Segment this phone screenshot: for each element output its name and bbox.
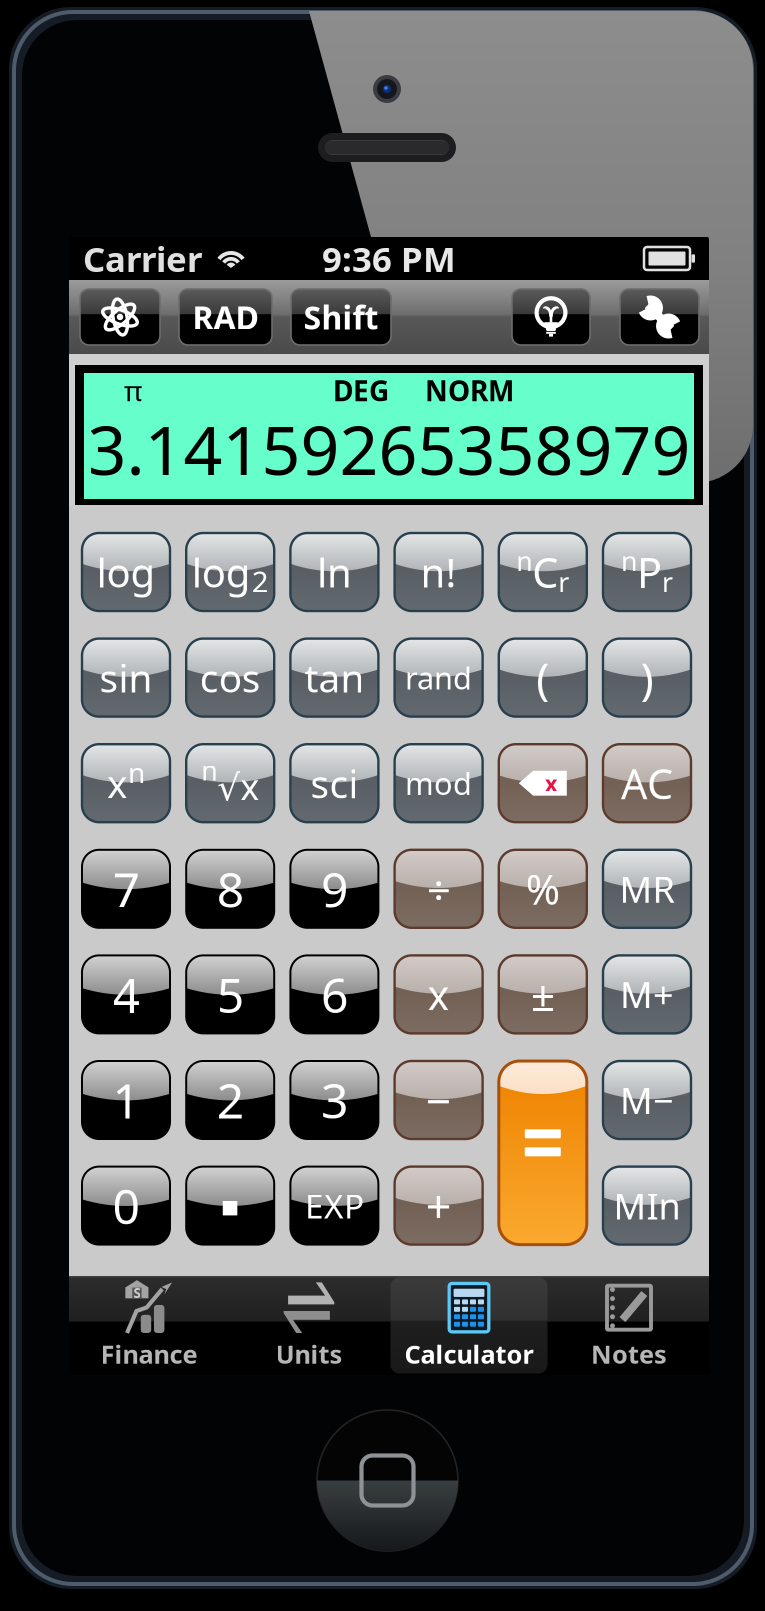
staticText: r xyxy=(558,564,569,600)
button[interactable]: n C r xyxy=(499,533,587,611)
staticText: ÷ xyxy=(427,860,451,917)
staticText: MR xyxy=(619,865,674,913)
button[interactable]: tan xyxy=(290,639,378,717)
staticText: 7 xyxy=(112,857,139,921)
staticText: n xyxy=(128,754,145,791)
staticText: x xyxy=(107,757,127,809)
button[interactable]: decimal point xyxy=(186,1167,274,1245)
staticText: Carrier xyxy=(83,235,202,281)
button[interactable]: sin xyxy=(82,639,170,717)
staticText: 2 xyxy=(252,561,269,600)
staticText: n xyxy=(201,752,217,788)
staticText: 0 xyxy=(112,1174,139,1237)
staticText: n xyxy=(621,543,637,579)
staticText: ( xyxy=(536,648,549,707)
button[interactable]: mod xyxy=(395,744,483,822)
staticText: ▪ xyxy=(220,1189,240,1222)
staticText: 5 xyxy=(217,962,244,1026)
staticText: sci xyxy=(310,757,358,809)
staticText: Calculator xyxy=(404,1337,533,1371)
staticText: x xyxy=(428,967,450,1022)
staticText: Finance xyxy=(100,1337,197,1371)
staticText: Notes xyxy=(591,1337,667,1371)
button[interactable]: factorial xyxy=(395,533,483,611)
button[interactable]: 5 xyxy=(186,955,274,1033)
staticText: − xyxy=(426,1070,452,1130)
button[interactable]: memory in xyxy=(603,1167,691,1245)
button[interactable]: delete xyxy=(499,744,587,822)
button[interactable]: natural log xyxy=(290,533,378,611)
button[interactable]: divide xyxy=(395,850,483,928)
button[interactable]: 3 xyxy=(290,1061,378,1139)
staticText: cos xyxy=(200,652,261,703)
staticText: MIn xyxy=(613,1182,680,1229)
staticText: RAD xyxy=(192,296,258,338)
staticText: NORM xyxy=(425,372,514,409)
staticText: 3.14159265358979 xyxy=(87,403,690,494)
button[interactable]: minus xyxy=(395,1061,483,1139)
staticText: 1 xyxy=(112,1068,139,1132)
staticText: ± xyxy=(531,966,555,1023)
staticText: EXP xyxy=(305,1183,364,1228)
button[interactable]: log xyxy=(82,533,170,611)
staticText: 6 xyxy=(321,962,348,1026)
button[interactable]: open parenthesis xyxy=(499,639,587,717)
staticText: S xyxy=(133,1284,140,1302)
button[interactable]: Hints xyxy=(512,289,590,345)
button[interactable]: n P r xyxy=(603,533,691,611)
button[interactable]: plus xyxy=(395,1167,483,1245)
button[interactable]: S xyxy=(69,1276,229,1375)
button[interactable]: Settings xyxy=(620,289,699,345)
button[interactable]: 4 xyxy=(82,955,170,1033)
staticText: tan xyxy=(304,652,364,703)
staticText: 3 xyxy=(321,1068,348,1132)
button[interactable]: memory recall xyxy=(603,850,691,928)
staticText: M+ xyxy=(620,970,674,1018)
button[interactable]: equals xyxy=(499,1061,587,1245)
button[interactable]: nth root of x xyxy=(186,744,274,822)
staticText: 9 xyxy=(321,857,348,921)
staticText: n! xyxy=(421,545,457,598)
button[interactable]: cos xyxy=(186,639,274,717)
button[interactable]: sci xyxy=(290,744,378,822)
button[interactable]: x to the n xyxy=(82,744,170,822)
staticText: Units xyxy=(275,1337,342,1371)
staticText: 2 xyxy=(217,1068,244,1132)
button[interactable]: percent xyxy=(499,850,587,928)
button[interactable]: RAD xyxy=(179,289,272,345)
button[interactable]: AC xyxy=(603,744,691,822)
staticText: sin xyxy=(99,652,152,703)
button[interactable]: 6 xyxy=(290,955,378,1033)
button[interactable]: memory add xyxy=(603,955,691,1033)
button[interactable]: 1 xyxy=(82,1061,170,1139)
button[interactable]: 9 xyxy=(290,850,378,928)
button[interactable]: Shift xyxy=(291,289,391,345)
button[interactable]: plus minus xyxy=(499,955,587,1033)
button[interactable]: EXP xyxy=(290,1167,378,1245)
staticText: C xyxy=(532,545,558,599)
button[interactable]: rand xyxy=(395,639,483,717)
staticText: 8 xyxy=(217,857,244,921)
staticText: mod xyxy=(405,763,472,803)
button[interactable]: 7 xyxy=(82,850,170,928)
button[interactable]: Units xyxy=(229,1276,389,1375)
button[interactable]: memory subtract xyxy=(603,1061,691,1139)
button[interactable]: multiply xyxy=(395,955,483,1033)
button[interactable]: 0 xyxy=(82,1167,170,1245)
staticText: DEG xyxy=(333,372,389,409)
button[interactable]: close parenthesis xyxy=(603,639,691,717)
staticText: AC xyxy=(621,756,673,811)
button[interactable]: log base 2 xyxy=(186,533,274,611)
button[interactable]: 2 xyxy=(186,1061,274,1139)
staticText: 4 xyxy=(112,962,139,1026)
staticText: 9:36 PM xyxy=(322,235,456,281)
staticText: M− xyxy=(620,1076,674,1124)
button[interactable]: Calculator xyxy=(389,1276,549,1375)
staticText: rand xyxy=(405,657,472,698)
button[interactable]: 8 xyxy=(186,850,274,928)
button[interactable]: Notes xyxy=(549,1276,709,1375)
button[interactable]: Scientific mode xyxy=(80,289,160,345)
staticText: x xyxy=(545,769,557,797)
staticText: % xyxy=(526,861,560,916)
staticText: r xyxy=(662,564,673,600)
